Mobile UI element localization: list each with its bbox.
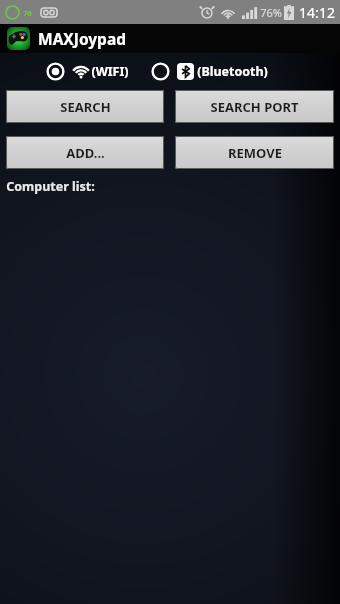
staticText: 14:12 xyxy=(299,3,335,22)
staticText: SEARCH xyxy=(60,98,111,116)
staticText: MAXJoypad xyxy=(38,28,126,49)
staticText: (WIFI) xyxy=(91,63,129,80)
button[interactable]: SEARCH xyxy=(6,90,164,123)
staticText: 76 xyxy=(23,8,32,18)
staticText: ADD... xyxy=(66,144,105,162)
button[interactable]: REMOVE xyxy=(175,136,334,169)
staticText: (Bluetooth) xyxy=(197,63,268,80)
button[interactable]: (WIFI) xyxy=(46,62,129,81)
staticText: REMOVE xyxy=(228,144,282,162)
button[interactable]: ADD... xyxy=(6,136,164,169)
staticText: SEARCH PORT xyxy=(210,98,299,116)
staticText: 76% xyxy=(260,5,282,20)
button[interactable]: (Bluetooth) xyxy=(151,62,268,81)
staticText: Computer list: xyxy=(6,178,95,195)
button[interactable]: SEARCH PORT xyxy=(175,90,334,123)
